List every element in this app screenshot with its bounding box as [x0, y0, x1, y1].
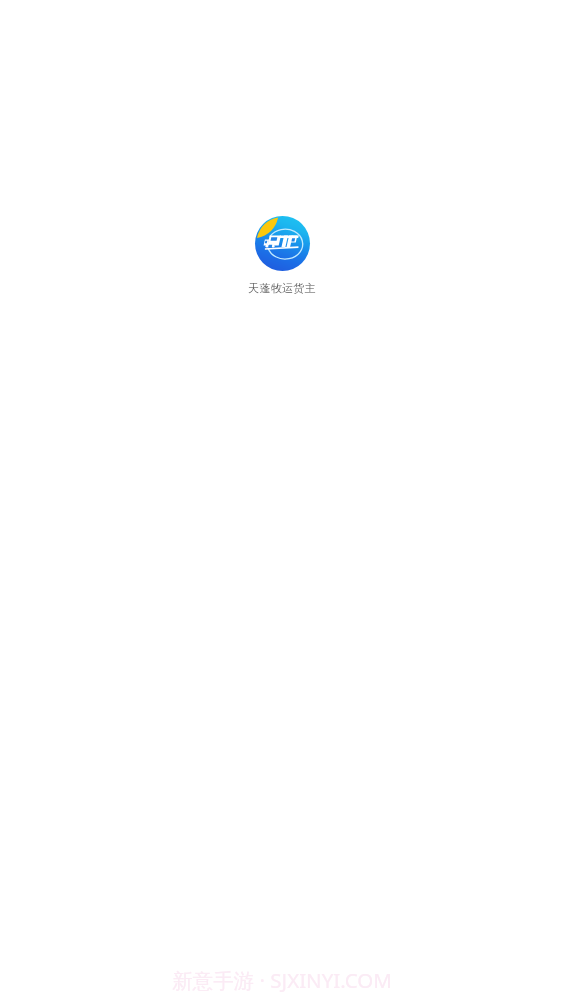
staticText: 天蓬牧运货主: [248, 281, 316, 295]
other: 天蓬牧运货主 app logo: [255, 216, 310, 271]
staticText: 新意手游 · SJXINYI.COM: [172, 966, 392, 994]
